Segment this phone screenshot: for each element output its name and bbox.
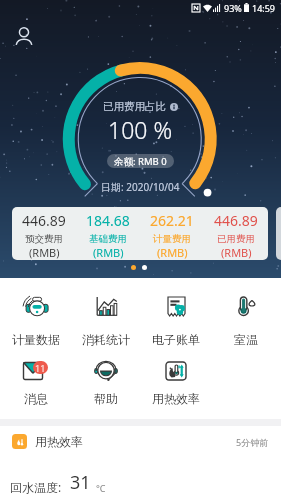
staticText: 446.89 <box>214 211 258 230</box>
staticText: 帮助 <box>94 391 118 406</box>
button[interactable]: 消耗统计 <box>71 296 141 347</box>
button[interactable]: 用热效率 <box>141 361 211 406</box>
staticText: 446.89 <box>22 211 66 230</box>
staticText: (RMB) <box>29 245 60 260</box>
staticText: 184.68 <box>86 211 130 230</box>
staticText: 93% <box>224 2 242 14</box>
staticText: °C <box>96 482 106 494</box>
staticText: 计量数据 <box>12 332 60 347</box>
staticText: (RMB) <box>221 245 252 260</box>
staticText: 31 <box>70 470 91 495</box>
staticText: 5分钟前 <box>236 436 269 448</box>
button[interactable]: 计量数据 <box>0 296 71 347</box>
button[interactable]: 室温 <box>211 296 281 347</box>
button[interactable]: 用热效率 <box>12 434 269 449</box>
button[interactable]: 帮助 <box>71 361 141 406</box>
staticText: 消息 <box>24 391 48 406</box>
staticText: 已用费用 <box>217 233 255 245</box>
staticText: 已用费用占比 <box>103 100 166 113</box>
staticText: 11 <box>35 362 46 374</box>
staticText: 用热效率 <box>35 434 83 449</box>
staticText: 预交费用 <box>25 233 63 245</box>
staticText: (RMB) <box>157 245 188 260</box>
staticText: 计量费用 <box>153 233 191 245</box>
button[interactable]: 446.89 <box>12 207 268 260</box>
button[interactable]: 电子账单 <box>141 296 211 347</box>
button[interactable]: Profile <box>11 24 37 50</box>
staticText: 回水温度: <box>10 479 62 495</box>
staticText: 室温 <box>234 332 258 347</box>
staticText: 14:59 <box>252 2 276 14</box>
staticText: 用热效率 <box>152 391 200 406</box>
staticText: (RMB) <box>93 245 124 260</box>
staticText: 消耗统计 <box>82 332 130 347</box>
staticText: 262.21 <box>150 211 194 230</box>
staticText: 日期: 2020/10/04 <box>101 180 180 194</box>
staticText: 余额: RMB 0 <box>114 155 167 168</box>
staticText: 电子账单 <box>152 332 200 347</box>
button[interactable]: 11 <box>0 361 71 406</box>
staticText: 基础费用 <box>89 233 127 245</box>
staticText: 100 % <box>108 114 173 145</box>
